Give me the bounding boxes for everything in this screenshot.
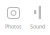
staticText: Sound	[30, 23, 45, 30]
staticText: Photos	[5, 23, 22, 30]
button[interactable]: Photos	[5, 7, 22, 30]
button[interactable]: Sound	[30, 6, 45, 30]
